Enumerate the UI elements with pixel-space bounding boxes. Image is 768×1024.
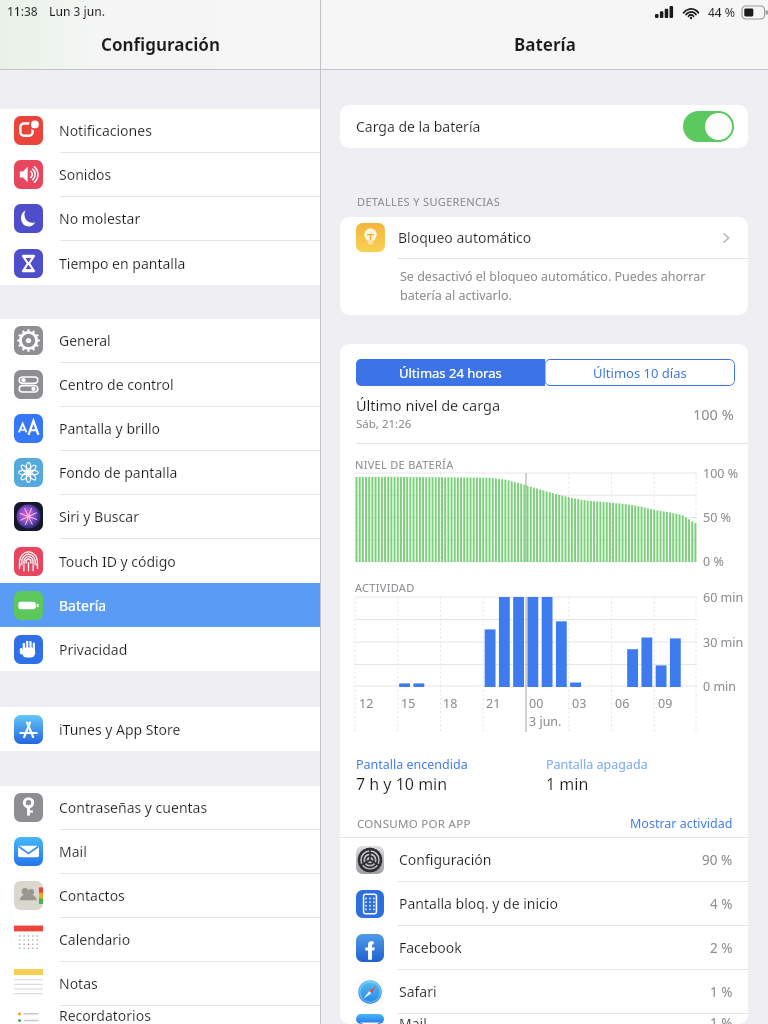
staticText: 15 <box>401 695 416 712</box>
staticText: Batería <box>514 33 576 56</box>
staticText: ACTIVIDAD <box>355 580 415 595</box>
staticText: 12 <box>359 695 374 712</box>
button[interactable]: Últimos 10 días <box>545 359 735 386</box>
button[interactable]: iTunes y App Store <box>0 707 320 751</box>
staticText: 30 min <box>703 634 744 651</box>
button[interactable]: Bloqueo automático <box>340 217 748 258</box>
staticText: iTunes y App Store <box>59 720 181 739</box>
staticText: NIVEL DE BATERÍA <box>355 457 454 472</box>
staticText: Mail <box>399 1014 427 1024</box>
staticText: Últimos 10 días <box>593 364 687 382</box>
button[interactable]: Centro de control <box>0 363 320 406</box>
button[interactable]: Notas <box>0 962 320 1005</box>
button[interactable]: Pantalla y brillo <box>0 407 320 450</box>
staticText: 100 % <box>693 404 734 424</box>
button[interactable]: Fondo de pantalla <box>0 451 320 494</box>
button[interactable]: Recordatorios <box>0 1006 320 1024</box>
staticText: 100 % <box>703 465 739 482</box>
staticText: Facebook <box>399 938 462 957</box>
staticText: No molestar <box>59 209 141 228</box>
staticText: 11:38 <box>7 3 38 19</box>
staticText: 1 % <box>710 1014 733 1024</box>
staticText: Últimas 24 horas <box>399 364 502 382</box>
staticText: Último nivel de carga <box>356 395 501 415</box>
button[interactable]: Mostrar actividad <box>630 815 733 832</box>
staticText: 7 h y 10 min <box>356 773 448 795</box>
staticText: Lun 3 jun. <box>49 3 106 19</box>
staticText: 1 min <box>546 773 589 795</box>
button[interactable]: Notificaciones <box>0 109 320 152</box>
button[interactable]: Carga de la batería <box>683 111 734 142</box>
button[interactable]: Touch ID y código <box>0 539 320 583</box>
staticText: Touch ID y código <box>59 552 176 571</box>
button[interactable]: Siri y Buscar <box>0 495 320 538</box>
button[interactable]: Mail <box>340 1014 748 1024</box>
staticText: Recordatorios <box>59 1006 151 1024</box>
staticText: 21 <box>486 695 501 712</box>
staticText: Calendario <box>59 930 131 949</box>
other: Abrir Bloqueo automático <box>718 230 734 246</box>
button[interactable]: Configuración <box>340 838 748 881</box>
staticText: 18 <box>443 695 458 712</box>
staticText: Carga de la batería <box>356 117 481 136</box>
staticText: 60 min <box>703 589 744 606</box>
staticText: 4 % <box>710 895 733 913</box>
button[interactable]: Safari <box>340 970 748 1013</box>
staticText: 03 <box>572 695 587 712</box>
staticText: 3 jun. <box>529 713 562 730</box>
staticText: DETALLES Y SUGERENCIAS <box>357 194 501 209</box>
staticText: 00 <box>529 695 544 712</box>
staticText: Contactos <box>59 886 125 905</box>
staticText: Configuración <box>399 850 492 869</box>
button[interactable]: Sonidos <box>0 153 320 196</box>
staticText: 09 <box>658 695 673 712</box>
staticText: 90 % <box>702 851 733 869</box>
button[interactable]: Batería <box>0 583 320 627</box>
staticText: Sonidos <box>59 165 112 184</box>
staticText: Pantalla apagada <box>546 756 648 773</box>
staticText: Notificaciones <box>59 121 152 140</box>
staticText: Privacidad <box>59 640 128 659</box>
staticText: Configuración <box>101 33 220 56</box>
button[interactable]: Mail <box>0 830 320 873</box>
button[interactable]: Tiempo en pantalla <box>0 241 320 285</box>
button[interactable]: Carga de la batería <box>340 105 748 148</box>
staticText: 0 % <box>703 553 724 570</box>
staticText: Mostrar actividad <box>630 815 733 832</box>
staticText: Pantalla bloq. y de inicio <box>399 894 558 913</box>
staticText: CONSUMO POR APP <box>357 816 471 832</box>
staticText: Tiempo en pantalla <box>59 254 186 273</box>
staticText: Pantalla y brillo <box>59 419 161 438</box>
button[interactable]: Contactos <box>0 874 320 917</box>
staticText: Se desactivó el bloqueo automático. Pued… <box>400 268 706 304</box>
staticText: Centro de control <box>59 375 174 394</box>
staticText: 06 <box>615 695 630 712</box>
staticText: 1 % <box>710 983 733 1001</box>
button[interactable]: Calendario <box>0 918 320 961</box>
button[interactable]: Contraseñas y cuentas <box>0 786 320 829</box>
staticText: Fondo de pantalla <box>59 463 178 482</box>
staticText: 2 % <box>710 939 733 957</box>
button[interactable]: Facebook <box>340 926 748 969</box>
staticText: Pantalla encendida <box>356 756 468 773</box>
staticText: Contraseñas y cuentas <box>59 798 208 817</box>
staticText: Siri y Buscar <box>59 507 139 526</box>
staticText: 0 min <box>703 678 737 695</box>
staticText: Mail <box>59 842 87 861</box>
staticText: Safari <box>399 982 437 1001</box>
button[interactable]: No molestar <box>0 197 320 240</box>
staticText: Sáb, 21:26 <box>356 416 412 432</box>
staticText: Notas <box>59 974 98 993</box>
staticText: 50 % <box>703 509 731 526</box>
staticText: Bloqueo automático <box>398 228 532 247</box>
button[interactable]: General <box>0 319 320 362</box>
button[interactable]: Últimas 24 horas <box>356 359 545 386</box>
staticText: Batería <box>59 596 107 615</box>
button[interactable]: Pantalla bloq. y de inicio <box>340 882 748 925</box>
staticText: 44 % <box>708 4 736 20</box>
button[interactable]: Privacidad <box>0 627 320 671</box>
staticText: General <box>59 331 111 350</box>
